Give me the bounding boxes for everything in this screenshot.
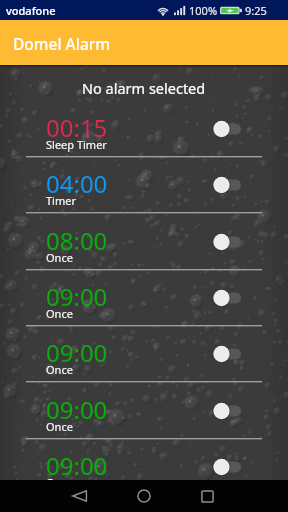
staticText: 09:00	[46, 393, 108, 426]
button[interactable]: 08:00	[0, 214, 288, 270]
button[interactable]: 09:00	[0, 270, 288, 326]
button[interactable]: Domel Alarm	[0, 20, 288, 65]
button[interactable]: Toggle alarm	[209, 173, 249, 197]
staticText: 09:00	[46, 280, 108, 313]
button[interactable]: Toggle alarm	[209, 342, 249, 366]
staticText: Timer	[46, 193, 76, 208]
button[interactable]: Toggle alarm	[209, 117, 249, 141]
button[interactable]: Home	[120, 480, 168, 512]
button[interactable]: Back	[56, 480, 104, 512]
button[interactable]: Toggle alarm	[209, 455, 249, 479]
button[interactable]: 09:00	[0, 326, 288, 382]
staticText: Sleep Timer	[46, 137, 107, 152]
button[interactable]: Toggle alarm	[209, 286, 249, 310]
staticText: 08:00	[46, 224, 108, 257]
button[interactable]: Recent apps	[183, 480, 231, 512]
staticText: Once	[46, 250, 73, 265]
button[interactable]: 00:15	[0, 101, 288, 157]
staticText: Once	[46, 362, 73, 377]
staticText: vodafone	[6, 3, 56, 18]
staticText: 09:00	[46, 336, 108, 369]
staticText: 9:25	[245, 3, 267, 18]
staticText: Once	[46, 419, 73, 434]
button[interactable]: 09:00	[0, 439, 288, 495]
staticText: 04:00	[46, 167, 108, 200]
button[interactable]: Toggle alarm	[209, 399, 249, 423]
button[interactable]: Toggle alarm	[209, 230, 249, 254]
staticText: No alarm selected	[82, 78, 206, 98]
button[interactable]: 04:00	[0, 157, 288, 213]
staticText: 00:15	[46, 111, 108, 144]
staticText: Once	[46, 475, 73, 490]
staticText: 09:00	[46, 449, 108, 482]
button[interactable]: 09:00	[0, 383, 288, 439]
staticText: Domel Alarm	[13, 33, 111, 54]
staticText: 100%	[189, 3, 218, 18]
staticText: Once	[46, 306, 73, 321]
